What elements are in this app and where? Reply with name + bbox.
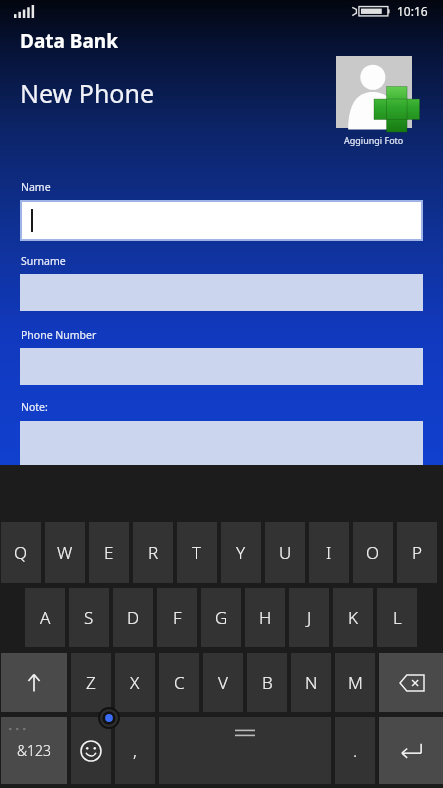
button[interactable]: T — [177, 522, 217, 583]
staticText: V — [218, 671, 228, 694]
staticText: R — [148, 541, 159, 564]
staticText: W — [57, 541, 73, 564]
button[interactable]: I — [309, 522, 349, 583]
staticText: U — [279, 541, 292, 564]
button[interactable]: Enter — [379, 717, 443, 784]
button[interactable]: E — [89, 522, 129, 583]
staticText: Phone Number — [21, 328, 97, 342]
button[interactable]: C — [159, 653, 199, 712]
button[interactable]: X — [115, 653, 155, 712]
staticText: I — [326, 541, 332, 564]
button[interactable]: M — [335, 653, 375, 712]
staticText: N — [305, 671, 318, 694]
button[interactable]: P — [397, 522, 437, 583]
staticText: H — [259, 606, 272, 629]
staticText: T — [192, 541, 202, 564]
staticText: . — [353, 739, 358, 762]
button[interactable]: R — [133, 522, 173, 583]
staticText: Data Bank — [20, 28, 119, 54]
button[interactable]: , — [115, 717, 155, 784]
staticText: O — [366, 541, 380, 564]
staticText: , — [133, 739, 137, 762]
button[interactable]: D — [113, 588, 153, 647]
button[interactable]: A — [25, 588, 65, 647]
staticText: Z — [86, 671, 96, 694]
button[interactable]: Backspace — [379, 653, 443, 712]
button[interactable]: . — [335, 717, 375, 784]
button[interactable]: N — [291, 653, 331, 712]
button[interactable]: V — [203, 653, 243, 712]
staticText: F — [173, 606, 182, 629]
button[interactable]: Z — [71, 653, 111, 712]
staticText: New Phone — [20, 76, 155, 110]
button[interactable]: O — [353, 522, 393, 583]
staticText: E — [104, 541, 114, 564]
button[interactable]: Space — [159, 717, 331, 784]
staticText: L — [393, 606, 402, 629]
staticText: X — [130, 671, 140, 694]
button[interactable]: W — [45, 522, 85, 583]
button[interactable]: U — [265, 522, 305, 583]
button[interactable]: Y — [221, 522, 261, 583]
staticText: B — [262, 671, 273, 694]
staticText: A — [40, 606, 51, 629]
staticText: G — [215, 606, 228, 629]
button[interactable] — [22, 202, 421, 239]
button[interactable]: H — [245, 588, 285, 647]
button[interactable]: B — [247, 653, 287, 712]
staticText: 10:16 — [397, 3, 428, 19]
staticText: P — [412, 541, 423, 564]
staticText: &123 — [17, 741, 52, 760]
button[interactable]: G — [201, 588, 241, 647]
staticText: Y — [236, 541, 246, 564]
staticText: K — [348, 606, 358, 629]
staticText: J — [307, 606, 312, 629]
button[interactable]: Q — [1, 522, 41, 583]
button[interactable]: K — [333, 588, 373, 647]
button[interactable]: F — [157, 588, 197, 647]
button[interactable]: L — [377, 588, 417, 647]
button[interactable]: &123 — [1, 717, 67, 784]
staticText: Q — [14, 541, 28, 564]
button[interactable]: Shift — [1, 653, 67, 712]
staticText: S — [84, 606, 94, 629]
button[interactable]: Aggiungi Foto — [318, 56, 418, 146]
staticText: Aggiungi Foto — [344, 134, 404, 146]
staticText: Surname — [21, 254, 66, 268]
button[interactable]: J — [289, 588, 329, 647]
staticText: D — [127, 606, 140, 629]
button[interactable]: Emoji — [71, 717, 111, 784]
staticText: Name — [21, 180, 51, 194]
staticText: M — [348, 671, 363, 694]
staticText: Note: — [21, 400, 48, 414]
staticText: C — [174, 671, 185, 694]
button[interactable]: S — [69, 588, 109, 647]
